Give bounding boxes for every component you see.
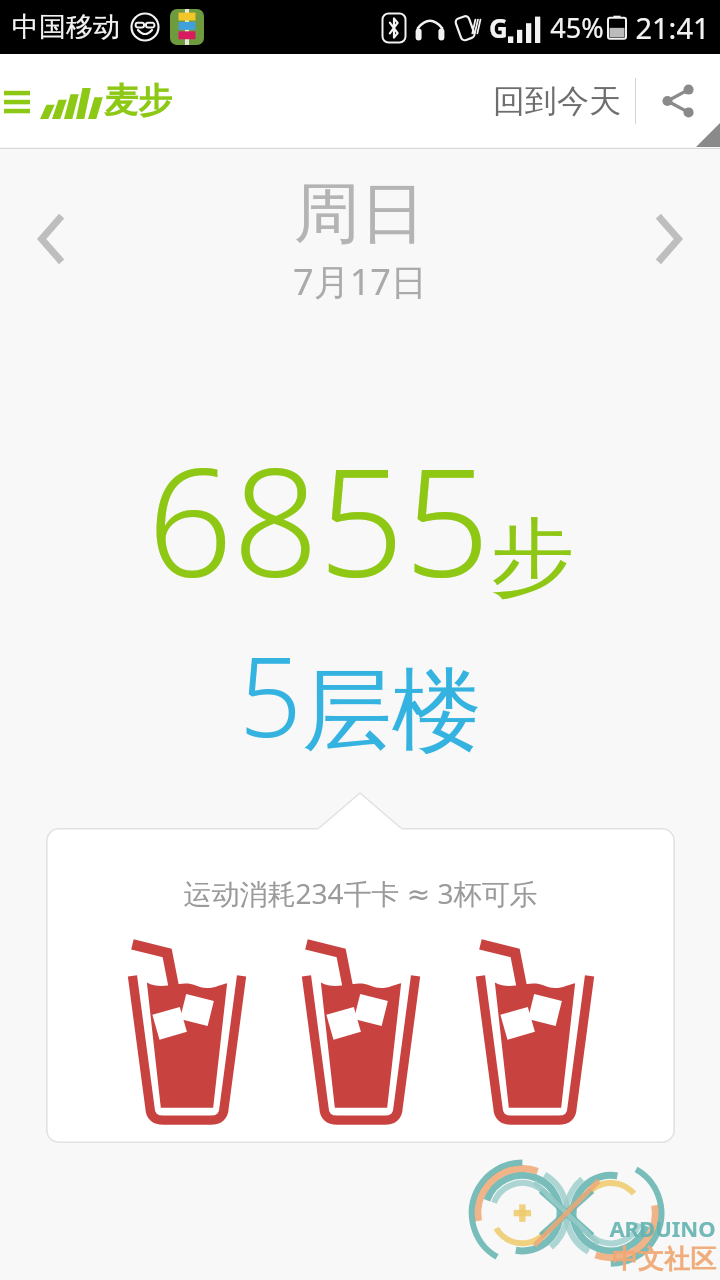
button[interactable]: Next day	[640, 200, 698, 278]
staticText: 运动消耗234千卡 ≈ 3杯可乐	[183, 874, 538, 912]
staticText: 5	[239, 619, 302, 769]
button[interactable]: Menu	[0, 71, 180, 130]
staticText: 回到今天	[493, 81, 621, 121]
staticText: 周日	[294, 172, 426, 255]
button[interactable]: Previous day	[22, 200, 80, 278]
staticText: 6855	[147, 417, 490, 621]
button[interactable]: 6855	[147, 417, 574, 621]
staticText: 麦步	[104, 79, 172, 122]
button[interactable]: 运动消耗234千卡 ≈ 3杯可乐	[46, 828, 675, 1143]
button[interactable]: Share	[636, 65, 720, 137]
staticText: 21:41	[635, 8, 710, 47]
staticText: 层楼	[302, 654, 482, 767]
staticText: 45%	[550, 9, 604, 46]
staticText: ARDUINO	[609, 1213, 716, 1243]
button[interactable]: 5	[239, 619, 482, 769]
staticText: 中文社区	[612, 1243, 716, 1276]
staticText: 中国移动	[12, 10, 120, 44]
staticText: G	[489, 10, 508, 45]
button[interactable]: 回到今天	[479, 67, 635, 135]
staticText: 7月17日	[293, 257, 427, 306]
staticText: 步	[490, 505, 574, 611]
